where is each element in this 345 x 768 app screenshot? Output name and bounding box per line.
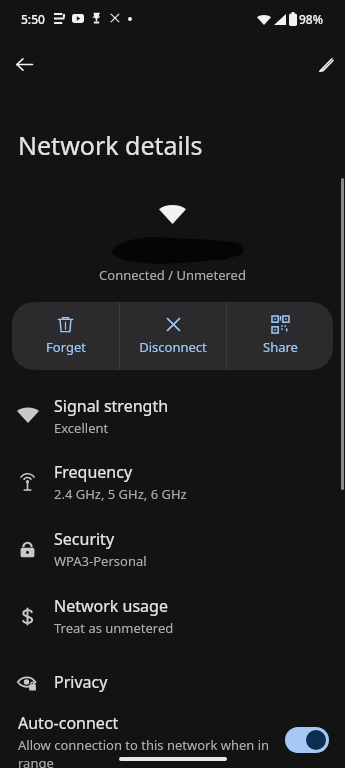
button[interactable]: Frequency bbox=[0, 454, 345, 510]
staticText: Treat as unmetered bbox=[54, 619, 174, 637]
staticText: Forget bbox=[46, 338, 86, 356]
staticText: Share bbox=[263, 338, 298, 356]
staticText: Allow connection to this network when in… bbox=[18, 736, 277, 768]
staticText: 2.4 GHz, 5 GHz, 6 GHz bbox=[54, 485, 187, 503]
staticText: WPA3-Personal bbox=[54, 552, 147, 570]
button[interactable]: Forget bbox=[12, 302, 119, 370]
button[interactable]: Share bbox=[227, 302, 333, 370]
button[interactable]: Privacy bbox=[0, 660, 345, 704]
button[interactable]: Back bbox=[6, 46, 42, 82]
staticText: Disconnect bbox=[139, 338, 207, 356]
button[interactable]: Disconnect bbox=[120, 302, 226, 370]
staticText: Security bbox=[54, 528, 115, 550]
button[interactable]: Security bbox=[0, 521, 345, 577]
button[interactable]: Auto-connect bbox=[0, 712, 345, 768]
staticText: Signal strength bbox=[54, 395, 169, 417]
staticText: Frequency bbox=[54, 461, 133, 483]
staticText: Auto-connect bbox=[18, 712, 119, 734]
button[interactable]: Network usage bbox=[0, 588, 345, 644]
staticText: Excellent bbox=[54, 419, 109, 437]
button[interactable]: Signal strength bbox=[0, 388, 345, 444]
staticText: 98% bbox=[299, 11, 323, 27]
staticText: Privacy bbox=[54, 671, 108, 693]
staticText: Network usage bbox=[54, 595, 168, 617]
staticText: 5:50 bbox=[21, 11, 45, 27]
staticText: Connected / Unmetered bbox=[0, 266, 345, 284]
button[interactable]: Edit bbox=[308, 46, 344, 82]
staticText: Network details bbox=[18, 128, 203, 162]
